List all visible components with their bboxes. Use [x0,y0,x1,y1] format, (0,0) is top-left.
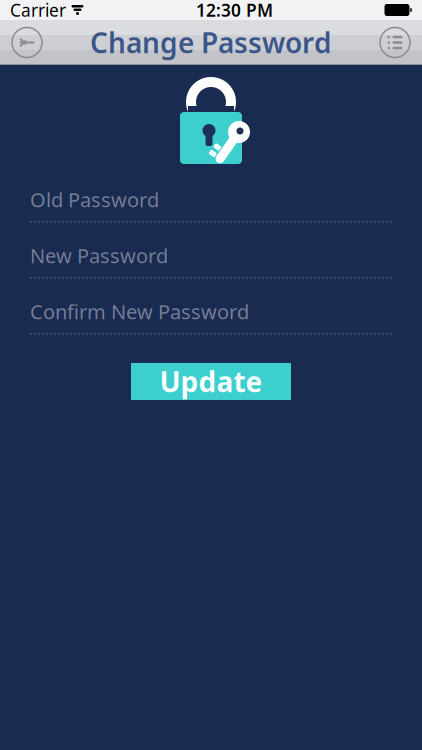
button[interactable]: Update [131,363,291,400]
button[interactable]: Back [0,20,54,64]
staticText: Change Password [90,24,332,61]
staticText: New Password [30,242,168,269]
staticText: Confirm New Password [30,298,249,325]
staticText: Old Password [30,186,159,213]
staticText: Carrier [10,0,66,21]
button[interactable]: Menu [368,20,422,64]
staticText: 12:30 PM [196,0,273,21]
staticText: Update [159,363,262,400]
